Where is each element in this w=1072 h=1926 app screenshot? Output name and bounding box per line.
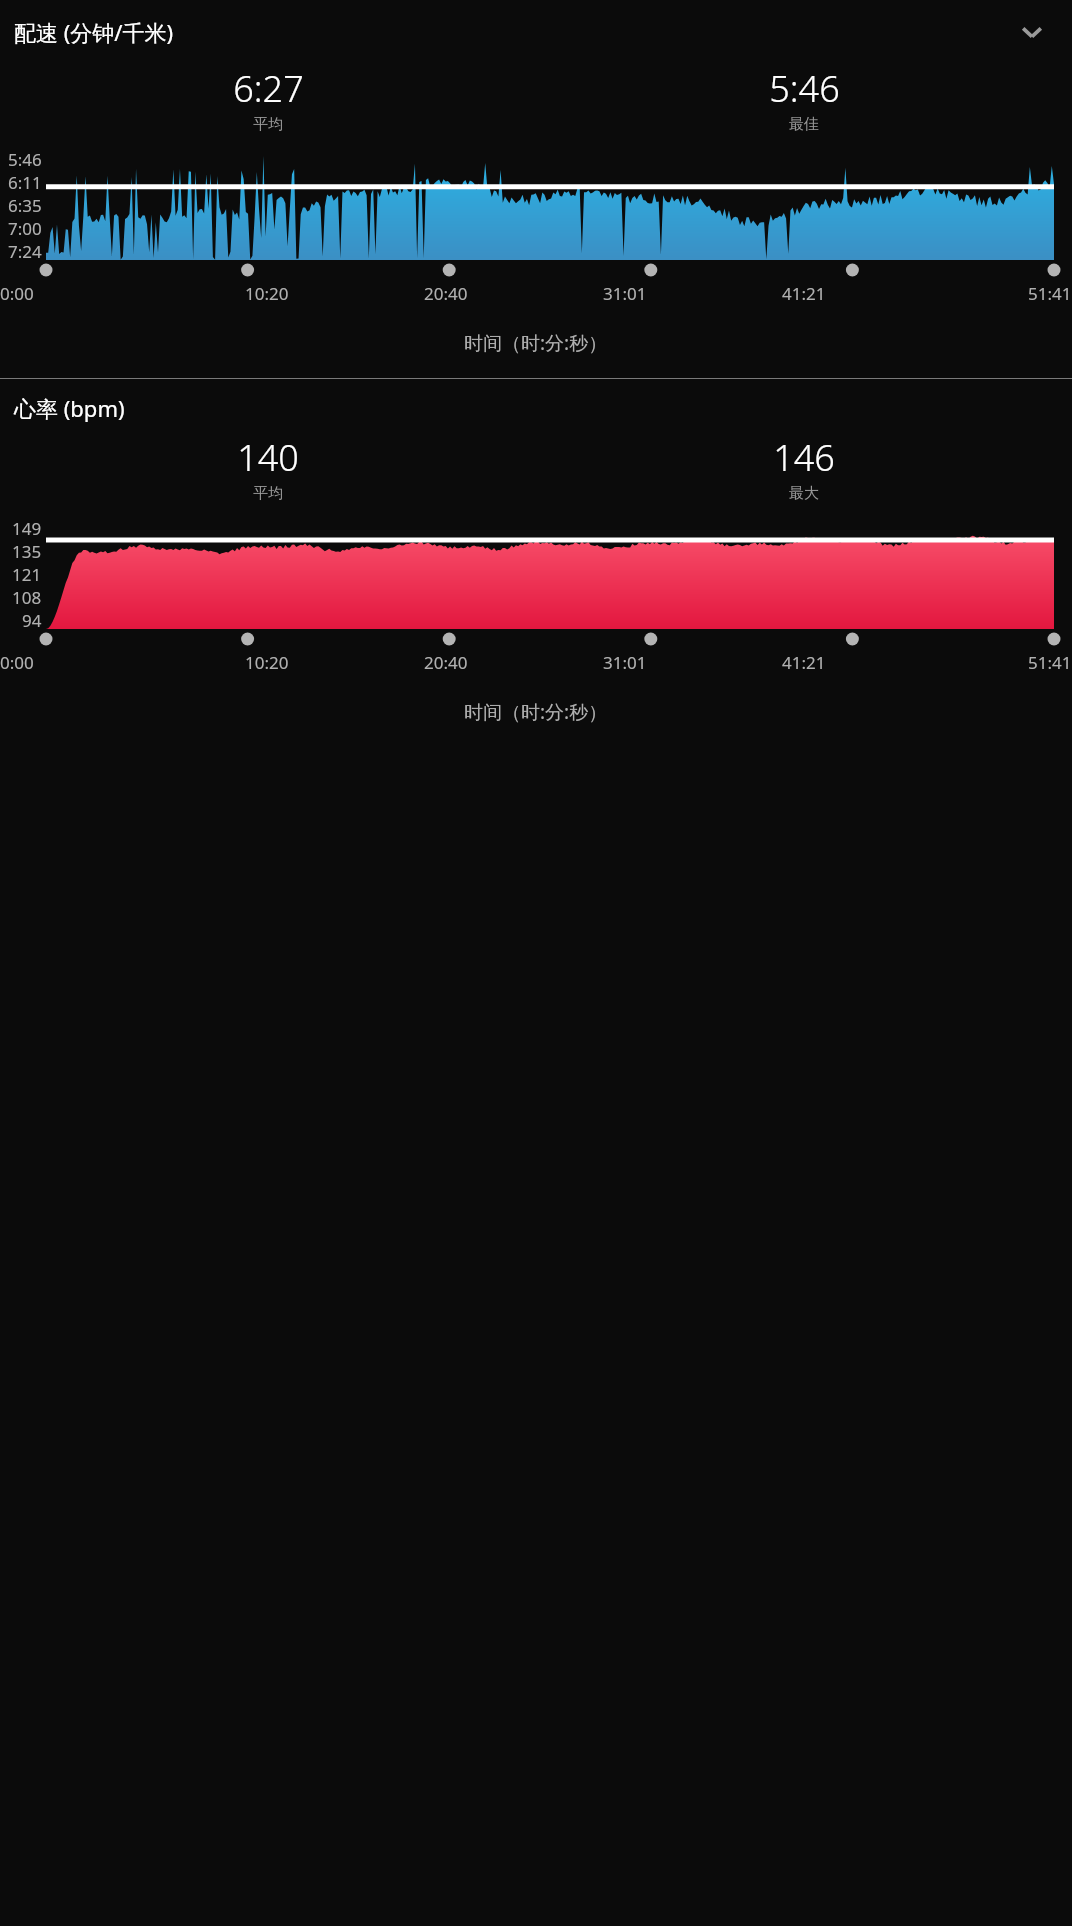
staticText: 149 <box>12 517 42 540</box>
staticText: 135 <box>12 540 42 563</box>
button[interactable]: 配速 (分钟/千米) <box>0 0 1072 58</box>
staticText: 51:41 <box>1028 651 1072 674</box>
staticText: 31:01 <box>603 282 647 305</box>
staticText: 51:41 <box>1028 282 1072 305</box>
staticText: 41:21 <box>782 651 826 674</box>
staticText: 20:40 <box>424 651 468 674</box>
staticText: 7:24 <box>8 240 42 260</box>
staticText: 10:20 <box>245 651 289 674</box>
staticText: 配速 (分钟/千米) <box>14 17 174 47</box>
staticText: 平均 <box>253 484 283 503</box>
staticText: 121 <box>12 563 42 586</box>
button[interactable]: Collapse <box>1010 10 1054 54</box>
staticText: 140 <box>237 433 299 482</box>
staticText: 41:21 <box>782 282 826 305</box>
staticText: 94 <box>22 609 42 629</box>
staticText: 心率 (bpm) <box>14 393 125 423</box>
button[interactable]: 心率 (bpm) <box>0 383 1072 427</box>
staticText: 6:27 <box>233 64 304 113</box>
staticText: 0:00 <box>0 651 34 674</box>
staticText: 平均 <box>253 115 283 134</box>
staticText: 5:46 <box>769 64 840 113</box>
staticText: 最佳 <box>789 115 819 134</box>
staticText: 5:46 <box>8 148 42 171</box>
staticText: 31:01 <box>603 651 647 674</box>
staticText: 7:00 <box>8 217 42 240</box>
staticText: 最大 <box>789 484 819 503</box>
staticText: 20:40 <box>424 282 468 305</box>
staticText: 0:00 <box>0 282 34 305</box>
staticText: 时间（时:分:秒） <box>464 330 608 356</box>
staticText: 6:35 <box>8 194 42 217</box>
staticText: 10:20 <box>245 282 289 305</box>
staticText: 108 <box>12 586 42 609</box>
staticText: 146 <box>773 433 835 482</box>
staticText: 6:11 <box>8 171 42 194</box>
staticText: 时间（时:分:秒） <box>464 699 608 725</box>
